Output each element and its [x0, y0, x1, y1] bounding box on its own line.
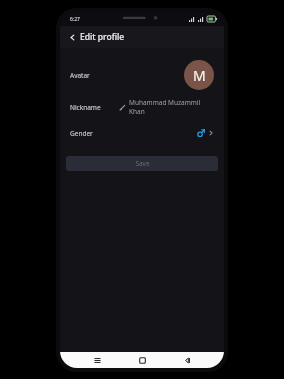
button[interactable]: Gender	[60, 120, 224, 146]
staticText: Muhammad Muzammil Khan	[129, 98, 214, 116]
staticText: Avatar	[70, 71, 90, 80]
button[interactable]: Save	[66, 156, 218, 171]
staticText: Nickname	[70, 103, 101, 112]
button[interactable]: Home	[134, 352, 150, 368]
staticText: Save	[135, 159, 150, 168]
staticText: Edit profile	[80, 31, 125, 43]
button[interactable]: Avatar	[60, 56, 224, 94]
staticText: 6:27	[70, 16, 80, 23]
button[interactable]: Nickname	[60, 94, 224, 120]
staticText: Gender	[70, 129, 93, 138]
button[interactable]: Back	[179, 352, 195, 368]
staticText: M	[193, 66, 206, 85]
button[interactable]: Recents	[89, 352, 105, 368]
button[interactable]: Back	[65, 30, 79, 44]
